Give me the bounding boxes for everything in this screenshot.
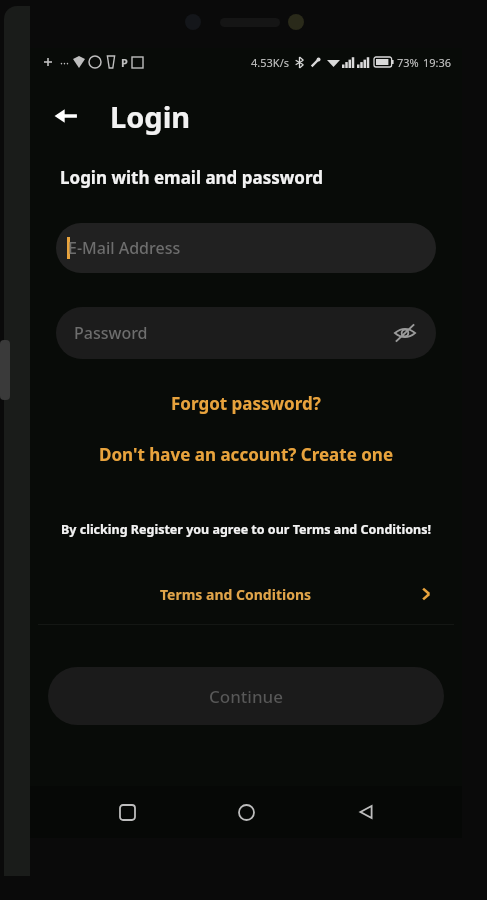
staticText: Don't have an account? Create one (99, 443, 394, 466)
staticText: Login with email and password (60, 166, 323, 189)
button[interactable]: Home (223, 789, 269, 835)
button[interactable]: Recents (104, 789, 150, 835)
staticText: By clicking Register you agree to our Te… (56, 521, 436, 538)
staticText: P (121, 55, 128, 70)
staticText: Forgot password? (171, 392, 321, 415)
button[interactable]: Password (56, 307, 436, 359)
button[interactable]: Don't have an account? Create one (30, 435, 462, 473)
staticText: 4.53K/s (251, 55, 289, 70)
staticText: 19:36 (423, 55, 452, 70)
staticText: ··· (60, 55, 69, 70)
button[interactable]: Show password (386, 314, 424, 352)
staticText: E-Mail Address (68, 237, 181, 259)
button[interactable]: Continue (48, 667, 444, 725)
staticText: 73% (397, 55, 419, 70)
staticText: Login (110, 97, 191, 136)
staticText: Continue (209, 685, 284, 708)
button[interactable]: Back (343, 789, 389, 835)
button[interactable]: Forgot password? (30, 383, 462, 423)
staticText: Password (74, 322, 148, 344)
button[interactable]: Back (46, 96, 86, 136)
button[interactable]: E-Mail Address (56, 223, 436, 273)
button[interactable]: Terms and Conditions (30, 572, 462, 616)
staticText: Terms and Conditions (160, 585, 312, 604)
